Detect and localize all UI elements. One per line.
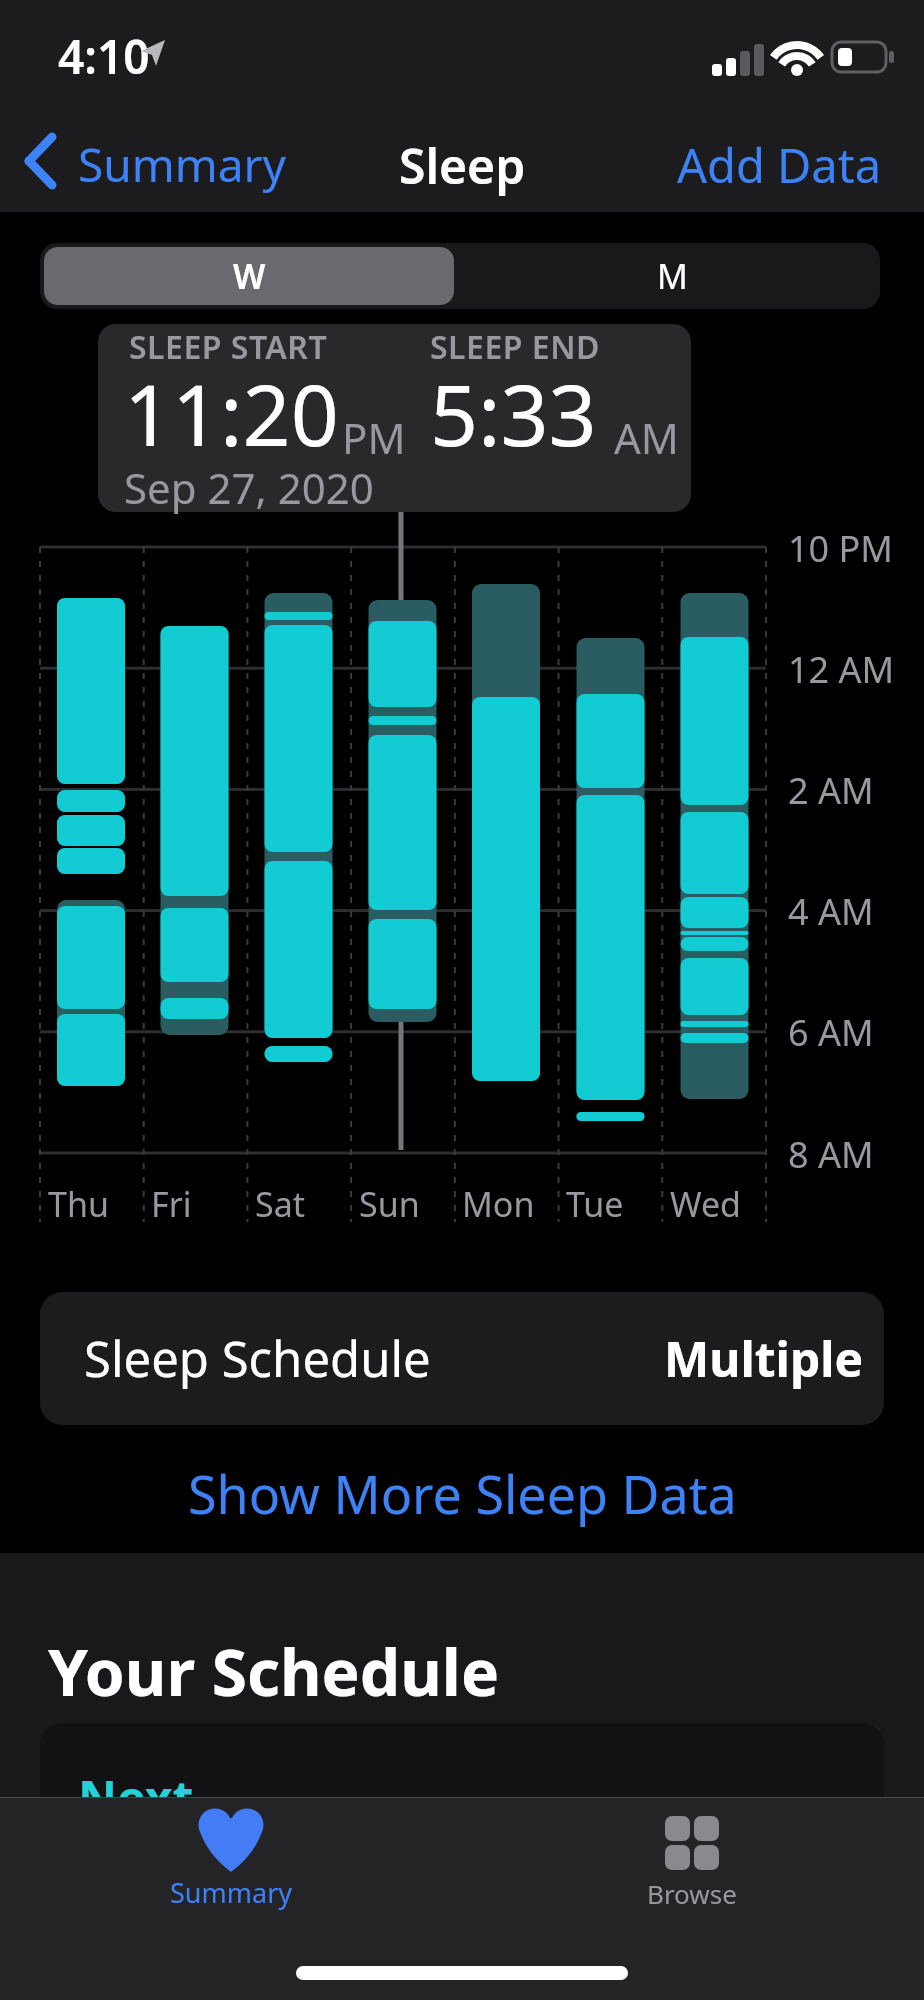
button[interactable]: Sleep Schedule (40, 1292, 884, 1425)
button[interactable]: M (464, 243, 880, 309)
staticText: 6 AM (788, 1008, 874, 1057)
staticText: 10 PM (788, 524, 893, 573)
staticText: 8 AM (788, 1130, 874, 1179)
staticText: Mon (462, 1181, 535, 1227)
staticText: Wed (670, 1181, 742, 1227)
button[interactable]: Browse (611, 1800, 773, 1920)
staticText: 4:10 (58, 25, 150, 88)
staticText: Multiple (664, 1326, 864, 1391)
staticText: Thu (48, 1181, 109, 1227)
staticText: Your Schedule (48, 1628, 500, 1715)
staticText: Fri (151, 1181, 192, 1227)
staticText: Sun (359, 1181, 420, 1227)
staticText: 12 AM (788, 645, 895, 694)
staticText: 5:33 (430, 356, 597, 470)
button[interactable]: W (44, 247, 454, 305)
staticText: 2 AM (788, 766, 874, 815)
staticText: Summary (170, 1874, 293, 1911)
staticText: Sleep (399, 133, 526, 198)
staticText: SLEEP START (129, 325, 328, 369)
staticText: PM (342, 409, 406, 466)
staticText: Show More Sleep Data (188, 1458, 737, 1528)
staticText: Browse (647, 1876, 737, 1911)
staticText: 11:20 (124, 356, 339, 470)
button[interactable]: Show More Sleep Data (162, 1458, 762, 1528)
staticText: Tue (566, 1181, 624, 1227)
button[interactable]: Summary (22, 126, 302, 196)
staticText: Add Data (677, 133, 882, 197)
staticText: Next (78, 1765, 194, 1830)
staticText: M (657, 253, 688, 299)
staticText: Sleep Schedule (84, 1325, 431, 1392)
button[interactable]: Add Data (660, 126, 890, 196)
button[interactable]: Summary (150, 1800, 312, 1920)
button[interactable]: Next (40, 1723, 884, 1863)
staticText: Sep 27, 2020 (124, 459, 374, 516)
staticText: W (233, 253, 266, 299)
staticText: AM (614, 409, 679, 466)
staticText: Summary (78, 133, 286, 196)
staticText: SLEEP END (430, 325, 600, 369)
staticText: Sat (255, 1181, 306, 1227)
staticText: 4 AM (788, 887, 874, 936)
